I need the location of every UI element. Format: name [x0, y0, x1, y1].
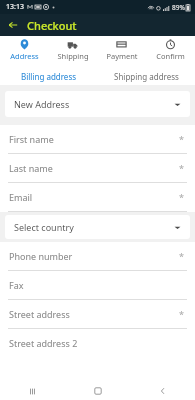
staticText: Payment	[106, 51, 138, 61]
staticText: 89%	[172, 3, 185, 12]
button[interactable]: Shipping	[48, 36, 97, 68]
button[interactable]: Fax	[0, 271, 195, 299]
staticText: Email	[9, 191, 33, 203]
button[interactable]: Shipping address	[97, 68, 195, 85]
staticText: *	[179, 308, 184, 320]
staticText: Street address	[9, 308, 70, 320]
button[interactable]: Phone number	[0, 242, 195, 270]
button[interactable]: Back	[4, 16, 22, 34]
button[interactable]: Address	[0, 36, 48, 68]
button[interactable]: Select country	[5, 215, 190, 239]
staticText: Confirm	[156, 51, 185, 61]
staticText: Shipping	[57, 51, 89, 61]
staticText: First name	[9, 133, 54, 145]
staticText: Select country	[14, 221, 74, 233]
button[interactable]: Street address	[0, 300, 195, 328]
staticText: Shipping address	[114, 71, 179, 82]
button[interactable]: First name	[0, 125, 195, 153]
button[interactable]: Home	[65, 382, 130, 400]
button[interactable]: Billing address	[0, 68, 97, 85]
staticText: Street address 2	[9, 337, 78, 349]
staticText: *	[179, 162, 184, 174]
staticText: Fax	[9, 279, 24, 291]
staticText: Phone number	[9, 250, 73, 262]
staticText: Last name	[9, 162, 53, 174]
button[interactable]: Payment	[97, 36, 146, 68]
staticText: Checkout	[27, 18, 77, 33]
button[interactable]: Confirm	[146, 36, 195, 68]
staticText: Address	[10, 51, 39, 61]
staticText: Billing address	[21, 71, 77, 82]
button[interactable]: Last name	[0, 154, 195, 182]
button[interactable]: Back	[130, 382, 195, 400]
button[interactable]: Email	[0, 183, 195, 211]
staticText: *	[179, 250, 184, 262]
button[interactable]: New Address	[5, 91, 190, 117]
button[interactable]: Street address 2	[0, 329, 195, 357]
staticText: 13:13	[6, 2, 24, 12]
staticText: *	[179, 191, 184, 203]
staticText: *	[179, 133, 184, 145]
button[interactable]: Recents	[0, 382, 65, 400]
staticText: New Address	[14, 98, 70, 110]
